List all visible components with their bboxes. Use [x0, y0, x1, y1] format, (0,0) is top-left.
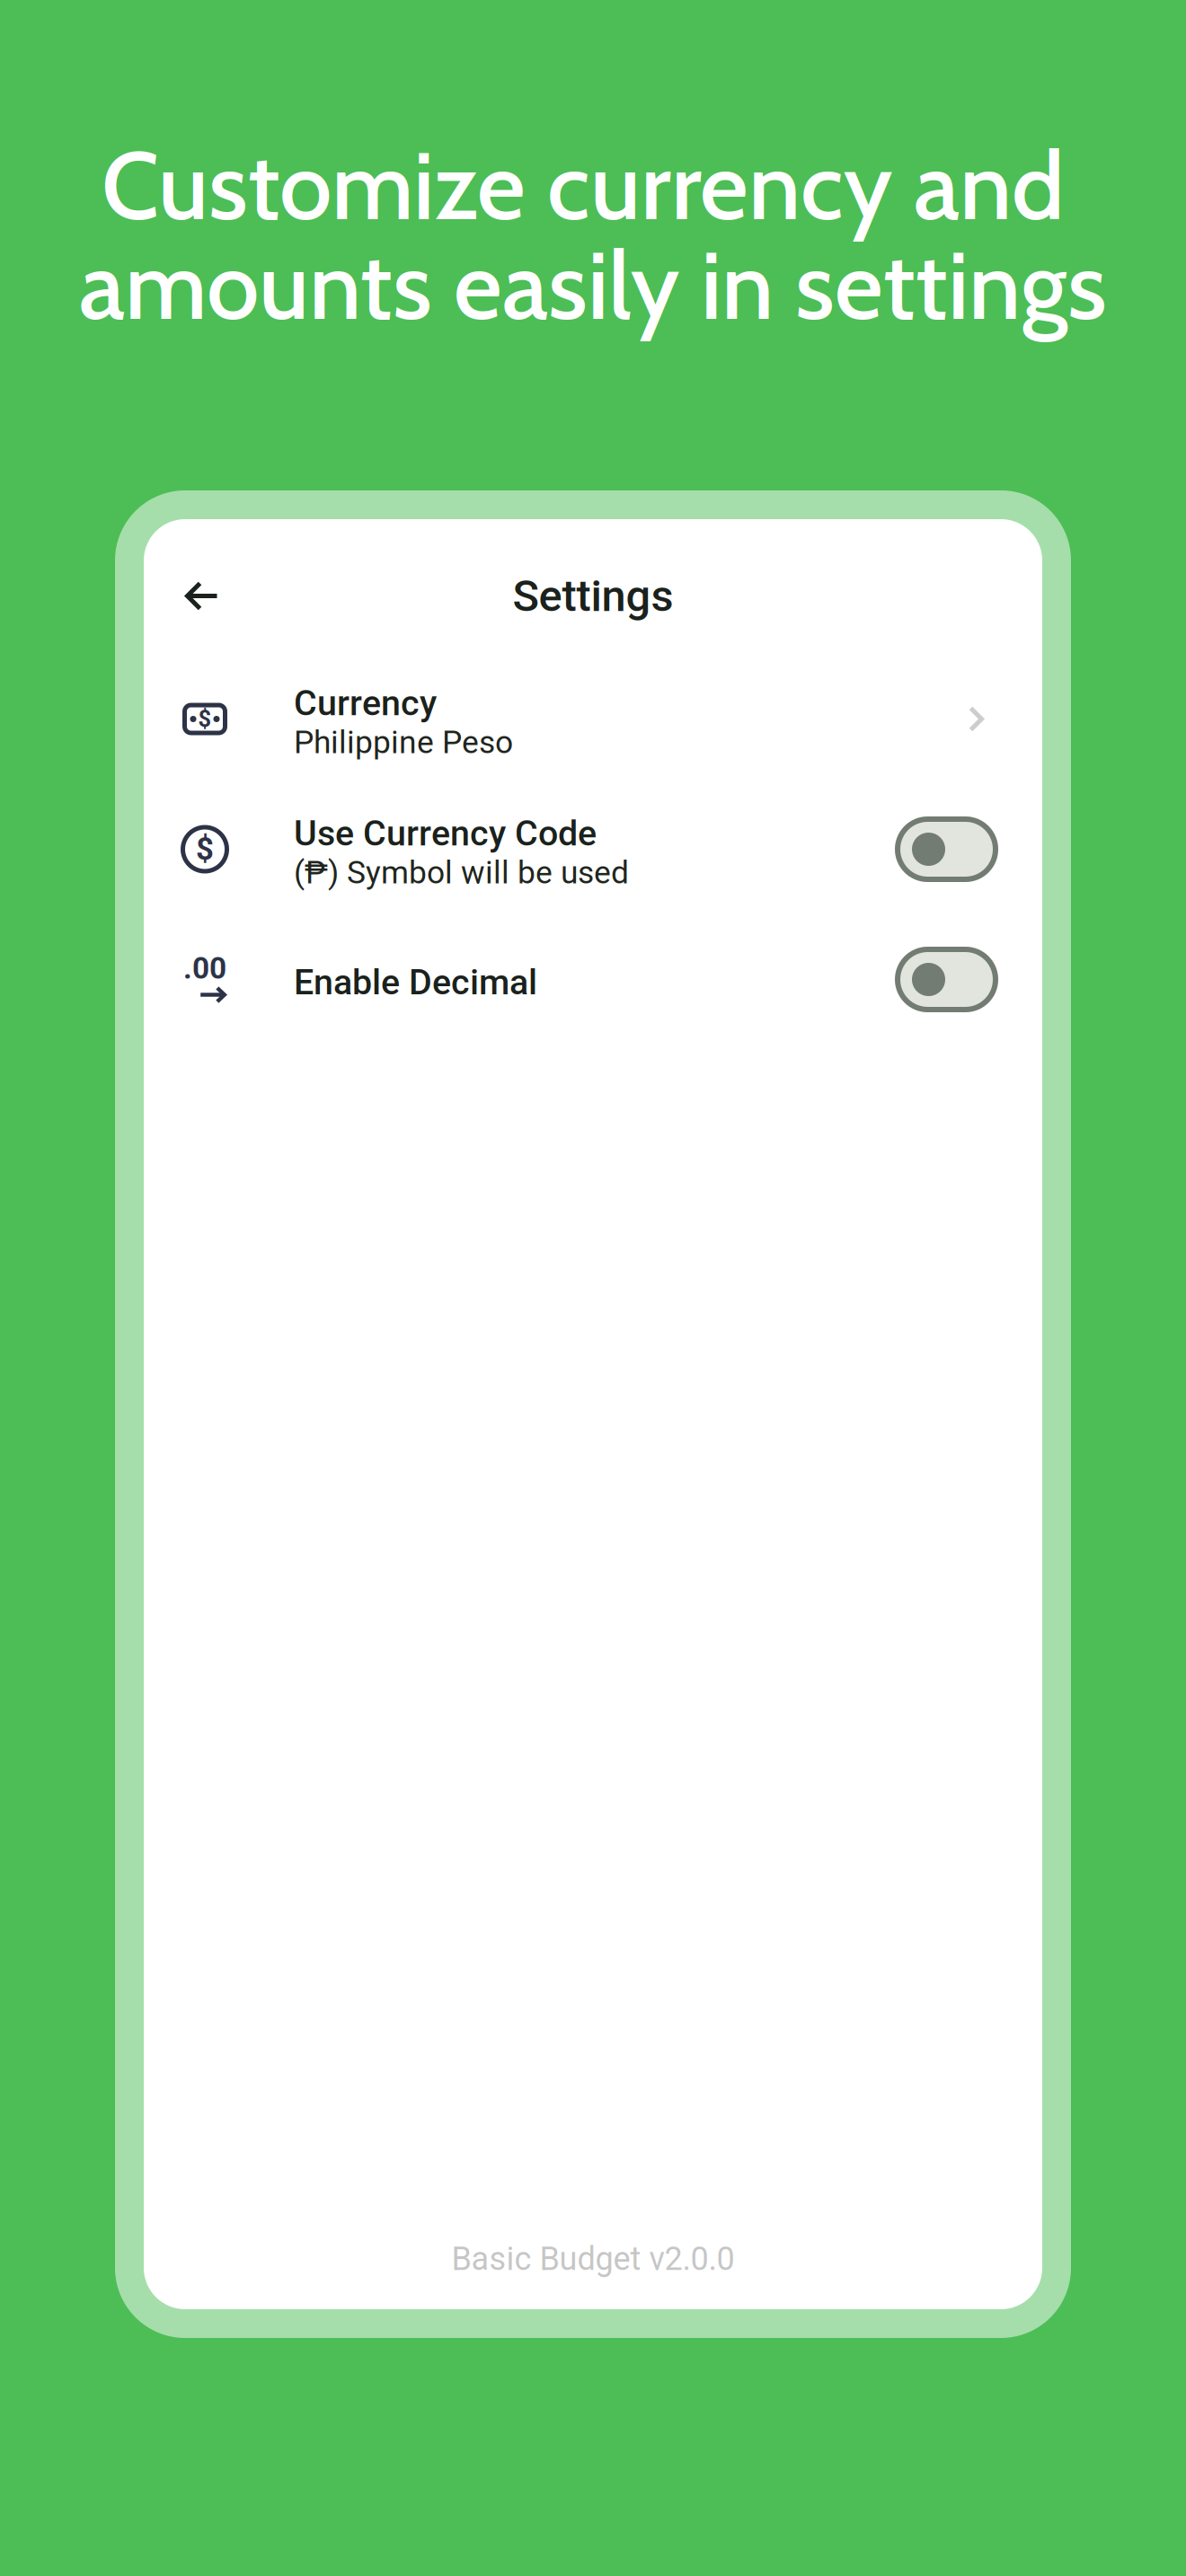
staticText: Customize currency and [102, 128, 1065, 243]
button[interactable]: $ [144, 784, 1042, 914]
staticText: Use Currency Code [294, 813, 597, 854]
staticText: Enable Decimal [294, 962, 537, 1003]
button[interactable]: Back [181, 574, 224, 618]
staticText: $ [198, 706, 212, 732]
button[interactable]: .00 [144, 914, 1042, 1045]
staticText: Basic Budget v2.0.0 [451, 2240, 735, 2278]
staticText: Settings [513, 570, 673, 622]
staticText: Currency [294, 682, 437, 724]
staticText: .00 [183, 951, 226, 986]
staticText: (₱) Symbol will be used [294, 854, 629, 891]
staticText: $ [196, 831, 214, 867]
staticText: Philippine Peso [294, 724, 513, 761]
staticText: amounts easily in settings [79, 228, 1107, 342]
button[interactable]: $ [144, 654, 1042, 784]
